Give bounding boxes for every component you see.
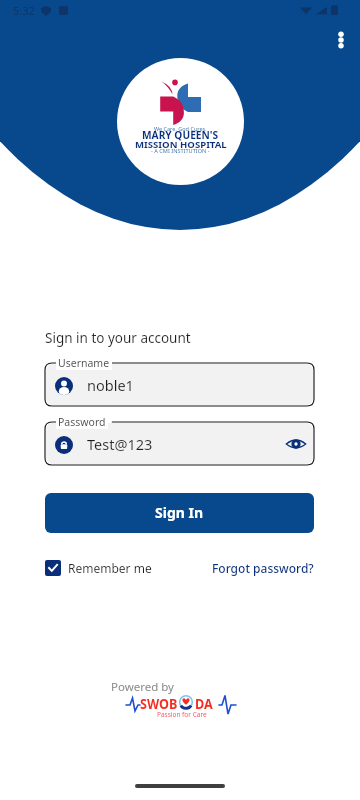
- button[interactable]: noble1: [46, 364, 313, 405]
- staticText: SWOB: [140, 693, 178, 713]
- staticText: MISSION HOSPITAL: [135, 138, 227, 151]
- button[interactable]: Test@123: [46, 423, 313, 464]
- button[interactable]: More options: [324, 22, 358, 56]
- staticText: Powered by: [111, 679, 174, 695]
- button[interactable]: Forgot password?: [212, 560, 314, 576]
- staticText: Password: [58, 415, 106, 429]
- staticText: DA: [195, 693, 213, 713]
- staticText: Test@123: [87, 434, 153, 454]
- staticText: noble1: [87, 375, 134, 395]
- staticText: Sign in to your account: [45, 329, 191, 347]
- staticText: Passion for Care: [157, 710, 207, 719]
- staticText: We Care. God Cures.: [154, 125, 207, 132]
- button[interactable]: Sign In: [45, 493, 314, 533]
- button[interactable]: Remember me: [45, 560, 152, 576]
- staticText: Forgot password?: [212, 560, 314, 576]
- staticText: - A CMI INSTITUTION -: [151, 147, 210, 155]
- button[interactable]: Toggle password visibility: [285, 433, 307, 455]
- staticText: Sign In: [155, 503, 204, 522]
- staticText: 5:32: [13, 3, 35, 18]
- staticText: Username: [58, 356, 110, 370]
- staticText: Remember me: [68, 560, 152, 576]
- staticText: MARY QUEEN'S: [142, 128, 219, 142]
